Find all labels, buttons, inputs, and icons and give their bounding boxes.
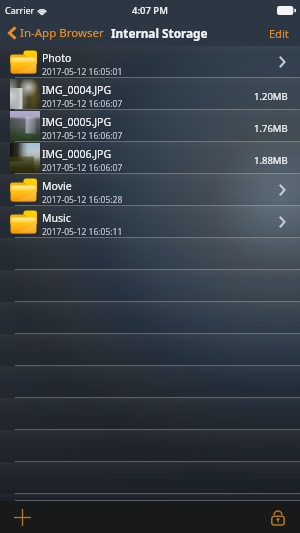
button[interactable] (0, 430, 300, 462)
staticText: 2017-05-12 16:05:11 (42, 226, 123, 238)
button[interactable]: IMG_0004.JPG (0, 78, 300, 110)
button[interactable]: Movie (0, 174, 300, 206)
staticText: Edit (269, 26, 289, 41)
staticText: 1.20MB (254, 90, 288, 103)
staticText: 2017-05-12 16:05:01 (42, 66, 123, 78)
staticText: In-App Browser (20, 25, 104, 41)
staticText: 4:07 PM (132, 4, 168, 17)
button[interactable]: Music (0, 206, 300, 238)
button[interactable]: Add (0, 501, 47, 533)
staticText: 2017-05-12 16:06:07 (42, 98, 123, 110)
staticText: IMG_0004.JPG (42, 83, 112, 97)
staticText: Music (42, 211, 71, 225)
staticText: IMG_0005.JPG (42, 115, 112, 129)
button[interactable]: IMG_0006.JPG (0, 142, 300, 174)
button[interactable] (0, 366, 300, 398)
button[interactable]: In-App Browser (0, 20, 108, 46)
staticText: 2017-05-12 16:06:07 (42, 162, 123, 174)
button[interactable] (0, 334, 300, 366)
staticText: Photo (42, 51, 72, 65)
button[interactable] (0, 238, 300, 270)
button[interactable] (0, 398, 300, 430)
staticText: 2017-05-12 16:05:28 (42, 194, 123, 206)
staticText: 1.76MB (254, 122, 288, 135)
button[interactable] (0, 494, 300, 501)
staticText: 1.88MB (254, 154, 288, 167)
button[interactable] (0, 302, 300, 334)
button[interactable] (0, 462, 300, 494)
staticText: Movie (42, 179, 72, 193)
staticText: 2017-05-12 16:06:07 (42, 130, 123, 142)
button[interactable] (0, 270, 300, 302)
staticText: Internal Storage (111, 25, 208, 41)
button[interactable]: Lock (255, 501, 300, 533)
staticText: IMG_0006.JPG (42, 147, 112, 161)
staticText: Carrier (5, 4, 35, 16)
button[interactable]: Edit (258, 20, 300, 46)
button[interactable]: IMG_0005.JPG (0, 110, 300, 142)
button[interactable]: Photo (0, 46, 300, 78)
